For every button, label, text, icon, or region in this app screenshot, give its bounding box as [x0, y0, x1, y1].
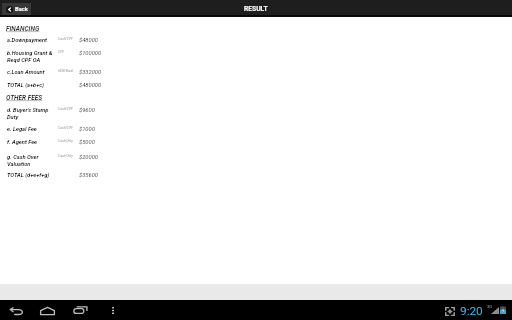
button[interactable]: More options [106, 303, 119, 317]
staticText: Cash/CPF [58, 107, 73, 111]
button[interactable]: Recent apps [71, 303, 91, 317]
button[interactable]: g. Cash Over Valuation [4, 152, 108, 165]
staticText: Cash/CPF [58, 37, 73, 41]
staticText: $48000 [79, 37, 98, 44]
staticText: CPF [58, 50, 65, 54]
staticText: FINANCING [6, 25, 40, 33]
staticText: f. Agent Fee [7, 139, 57, 146]
staticText: b.Housing Grant & Reqd CPF OA [7, 50, 57, 63]
staticText: $100000 [79, 50, 102, 57]
staticText: $480000 [79, 82, 102, 89]
staticText: a.Downpayment [7, 37, 57, 44]
button[interactable]: Back [6, 303, 26, 317]
staticText: $20000 [79, 154, 98, 161]
staticText: $5000 [79, 139, 95, 146]
button[interactable]: TOTAL (a+b+c) [4, 80, 108, 89]
staticText: Cash/CPF [58, 126, 73, 130]
button[interactable]: c.Loan Amount [4, 67, 108, 76]
staticText: 3G [487, 304, 493, 309]
button[interactable]: Home [38, 303, 58, 317]
staticText: e. Legal Fee [7, 126, 57, 133]
staticText: HDB/Bank [58, 69, 74, 73]
staticText: $332000 [79, 69, 102, 76]
staticText: TOTAL (d+e+f+g) [7, 172, 57, 179]
staticText: 9:20 [460, 304, 483, 318]
staticText: c.Loan Amount [7, 69, 57, 76]
staticText: $1000 [79, 126, 95, 133]
button[interactable]: b.Housing Grant & Reqd CPF OA [4, 48, 108, 61]
button[interactable]: d. Buyer's Stamp Duty [4, 105, 108, 118]
button[interactable]: a.Downpayment [4, 35, 108, 44]
staticText: $35600 [79, 172, 98, 179]
staticText: Cash Only [58, 139, 73, 143]
button[interactable]: f. Agent Fee [4, 137, 108, 146]
staticText: $9600 [79, 107, 95, 114]
staticText: TOTAL (a+b+c) [7, 82, 57, 89]
button[interactable]: TOTAL (d+e+f+g) [4, 170, 108, 179]
staticText: RESULT [244, 5, 268, 13]
button[interactable]: Full screen [442, 303, 458, 317]
staticText: Back [15, 6, 28, 13]
staticText: d. Buyer's Stamp Duty [7, 107, 57, 120]
staticText: OTHER FEES [6, 94, 43, 102]
staticText: g. Cash Over Valuation [7, 154, 57, 167]
button[interactable]: Back [2, 3, 31, 15]
button[interactable]: e. Legal Fee [4, 124, 108, 133]
staticText: Cash Only [58, 154, 73, 158]
